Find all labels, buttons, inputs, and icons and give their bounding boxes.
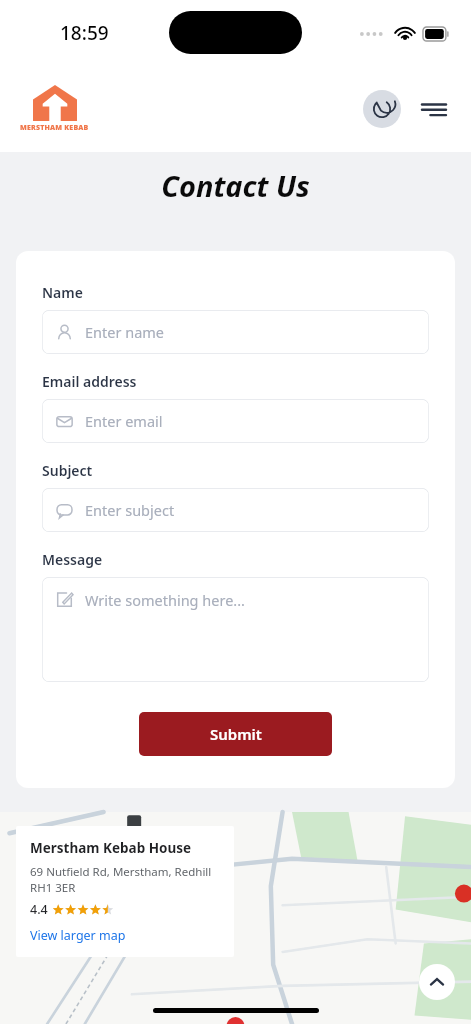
- staticText: 69 Nutfield Rd, Merstham, Redhill RH1 3E…: [30, 864, 212, 895]
- button[interactable]: View larger map: [30, 927, 126, 944]
- staticText: Write something here...: [85, 590, 245, 610]
- staticText: MERSTHAM KEBAB: [20, 123, 89, 133]
- staticText: Enter subject: [85, 500, 175, 520]
- staticText: Email address: [42, 372, 137, 391]
- staticText: Submit: [210, 724, 262, 744]
- button[interactable]: Enter email: [42, 399, 429, 443]
- staticText: Merstham Kebab House THE ...: [30, 839, 220, 857]
- staticText: Enter name: [85, 322, 165, 342]
- staticText: Subject: [42, 461, 93, 480]
- staticText: Message: [42, 550, 103, 569]
- button[interactable]: Map of Merstham Kebab House: [0, 812, 471, 1024]
- button[interactable]: Submit: [139, 712, 332, 756]
- button[interactable]: Enter name: [42, 310, 429, 354]
- staticText: 4.4: [30, 901, 48, 918]
- button[interactable]: Scroll to top: [419, 964, 455, 1000]
- staticText: Contact Us: [0, 166, 471, 205]
- button[interactable]: Write something here...: [42, 577, 429, 682]
- button[interactable]: Toggle dark mode: [363, 90, 401, 128]
- staticText: 18:59: [60, 20, 109, 46]
- button[interactable]: MERSTHAM KEBAB: [20, 85, 89, 133]
- staticText: Name: [42, 283, 83, 302]
- staticText: Enter email: [85, 411, 163, 431]
- button[interactable]: Menu: [417, 92, 451, 126]
- button[interactable]: Enter subject: [42, 488, 429, 532]
